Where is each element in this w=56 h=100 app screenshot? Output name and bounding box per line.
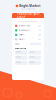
staticText: Oat milk 1 L [19, 34, 25, 36]
button[interactable]: Strawberry jam [15, 24, 41, 28]
button[interactable]: Green tea pack [15, 28, 41, 33]
staticText: Order #10428 · 12 May 2024 [18, 20, 38, 22]
button[interactable]: Delivery [15, 37, 41, 42]
staticText: 0.00 [38, 38, 41, 40]
staticText: 4.20 [38, 25, 41, 27]
staticText: Delivery details [15, 47, 26, 49]
staticText: Thanks for your order! [16, 12, 39, 19]
staticText: 7.50 [38, 29, 41, 31]
button[interactable]: Oat milk 1 L [15, 33, 41, 37]
staticText: Strawberry jam [19, 25, 30, 27]
staticText: your receipt is ready [20, 8, 35, 10]
staticText: Green tea pack [19, 29, 30, 31]
staticText: Total [15, 43, 19, 45]
staticText: 2.90 [38, 34, 41, 36]
staticText: Delivery [19, 38, 25, 40]
staticText: Bright Market [19, 4, 40, 8]
